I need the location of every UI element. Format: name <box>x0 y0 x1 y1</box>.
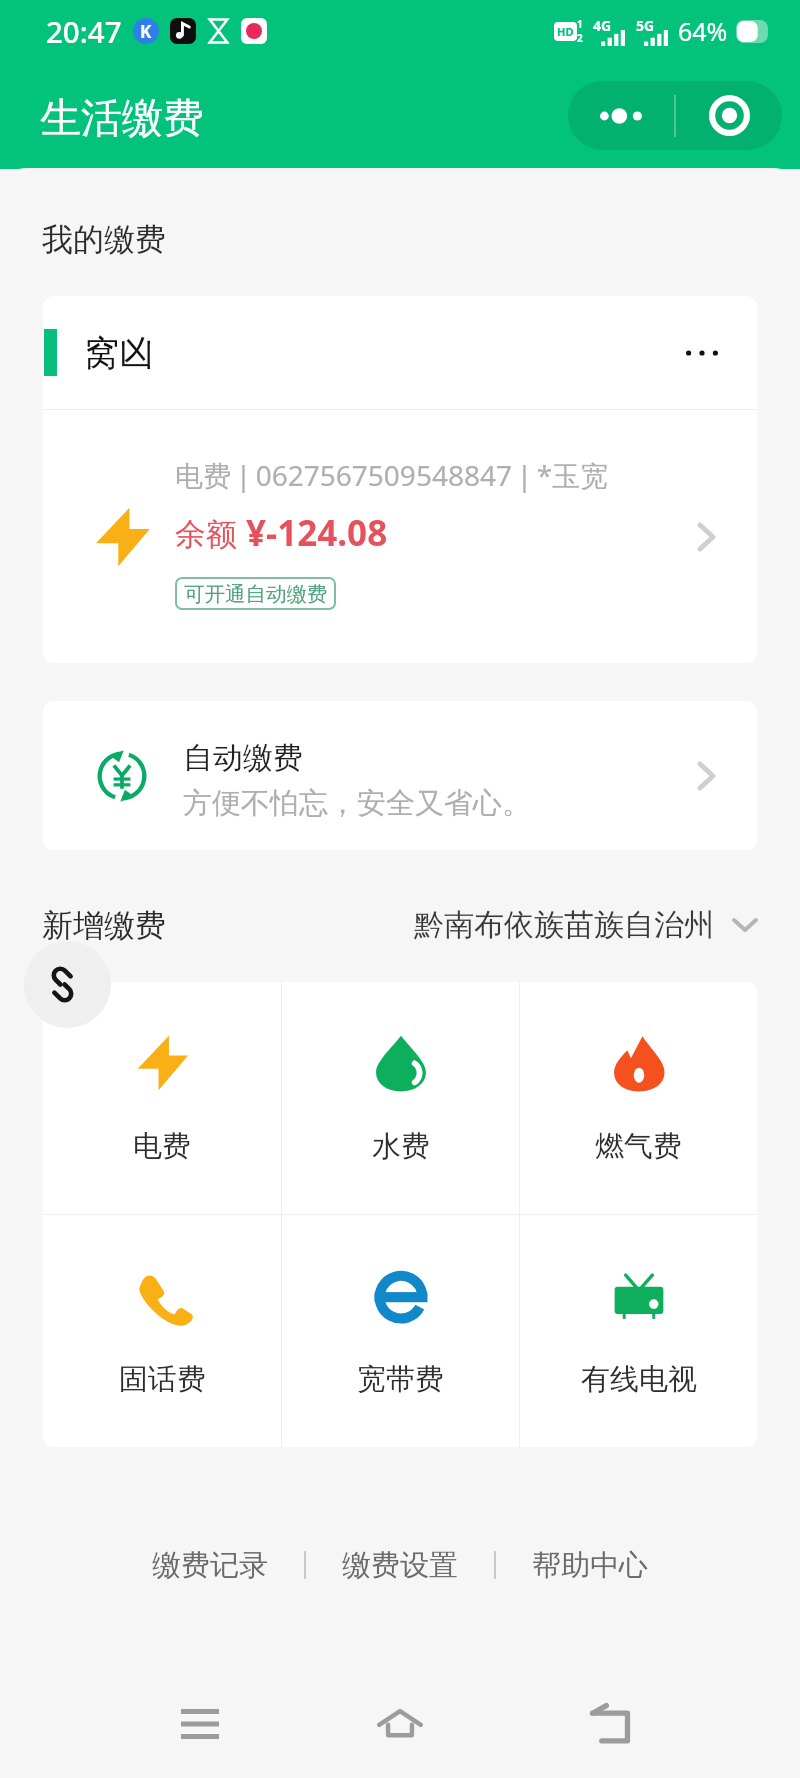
staticText: 余额 <box>175 512 246 554</box>
staticText: 宽带费 <box>357 1361 444 1398</box>
button[interactable]: Recent apps <box>120 1676 280 1772</box>
button[interactable]: 水费 <box>282 982 519 1214</box>
staticText: 窝凶 <box>84 331 154 375</box>
staticText: 4G <box>593 16 612 35</box>
staticText: 生活缴费 <box>40 93 204 145</box>
staticText: 水费 <box>372 1128 430 1165</box>
staticText: 帮助中心 <box>532 1547 648 1584</box>
button[interactable]: 自动缴费 <box>43 701 757 850</box>
button[interactable]: 缴费记录 <box>140 1540 280 1590</box>
staticText: 我的缴费 <box>42 220 166 259</box>
staticText: 燃气费 <box>595 1128 682 1165</box>
button[interactable]: Card options <box>670 321 734 385</box>
button[interactable]: 缴费设置 <box>330 1540 470 1590</box>
staticText: 有线电视 <box>581 1361 697 1398</box>
staticText: 黔南布依族苗族自治州 <box>414 906 714 944</box>
button[interactable]: More <box>568 81 674 150</box>
button[interactable]: 可开通自动缴费 <box>175 577 336 610</box>
staticText: 缴费设置 <box>342 1547 458 1584</box>
staticText: 2 <box>577 31 583 45</box>
button[interactable]: 黔南布依族苗族自治州 <box>414 906 758 944</box>
button[interactable]: 有线电视 <box>520 1215 757 1447</box>
staticText: 64% <box>678 14 728 48</box>
button[interactable]: 宽带费 <box>282 1215 519 1447</box>
staticText: 缴费记录 <box>152 1547 268 1584</box>
staticText: 方便不怕忘，安全又省心。 <box>183 785 531 822</box>
button[interactable]: 帮助中心 <box>520 1540 660 1590</box>
staticText: 5G <box>636 16 655 35</box>
button[interactable]: 电费 <box>43 982 281 1214</box>
staticText: 新增缴费 <box>42 906 166 945</box>
button[interactable]: Share link <box>24 941 111 1028</box>
staticText: 可开通自动缴费 <box>184 581 328 607</box>
button[interactable]: 窝凶 <box>43 296 757 663</box>
staticText: 电费 <box>133 1128 191 1165</box>
staticText: 电费 | 0627567509548847 | *玉宽 <box>175 456 609 494</box>
staticText: 自动缴费 <box>183 739 303 777</box>
staticText: HD <box>557 24 574 39</box>
button[interactable]: Back <box>530 1676 690 1772</box>
button[interactable]: 燃气费 <box>520 982 757 1214</box>
button[interactable]: Close mini program <box>676 81 782 150</box>
staticText: ¥-124.08 <box>246 509 388 557</box>
staticText: 20:47 <box>46 11 122 51</box>
button[interactable]: Home <box>320 1676 480 1772</box>
staticText: 固话费 <box>119 1361 206 1398</box>
button[interactable]: 固话费 <box>43 1215 281 1447</box>
staticText: 1 <box>577 17 583 31</box>
staticText: K <box>140 20 152 43</box>
